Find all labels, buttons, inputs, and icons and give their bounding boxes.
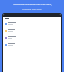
button[interactable]: Top app bar — [3, 14, 61, 17]
button[interactable] — [3, 41, 61, 48]
button[interactable] — [3, 34, 61, 41]
staticText: Collaborate seamlessly with your team, — [13, 3, 52, 6]
button[interactable] — [3, 20, 61, 27]
button[interactable] — [3, 27, 61, 34]
staticText: wherever they work — [22, 8, 42, 11]
